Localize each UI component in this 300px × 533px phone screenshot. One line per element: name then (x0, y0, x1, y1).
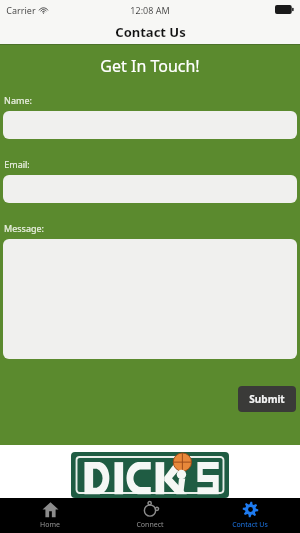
staticText: Name: (4, 94, 32, 106)
staticText: Contact Us (115, 23, 186, 41)
staticText: Connect (136, 520, 164, 530)
staticText: Get In Touch! (100, 55, 200, 77)
staticText: Home (40, 520, 60, 530)
button[interactable] (3, 111, 297, 139)
staticText: Message: (4, 222, 44, 234)
staticText: Contact Us (232, 520, 268, 530)
button[interactable]: Contact Us (200, 498, 300, 533)
staticText: Carrier (6, 4, 36, 16)
button[interactable] (3, 239, 297, 359)
staticText: Submit (249, 392, 285, 406)
button[interactable]: Connect (100, 498, 200, 533)
button[interactable]: Submit (238, 386, 296, 412)
button[interactable] (3, 175, 297, 203)
staticText: Email: (4, 158, 30, 170)
staticText: 12:08 AM (130, 4, 170, 16)
button[interactable] (71, 452, 229, 498)
button[interactable]: Home (0, 498, 100, 533)
